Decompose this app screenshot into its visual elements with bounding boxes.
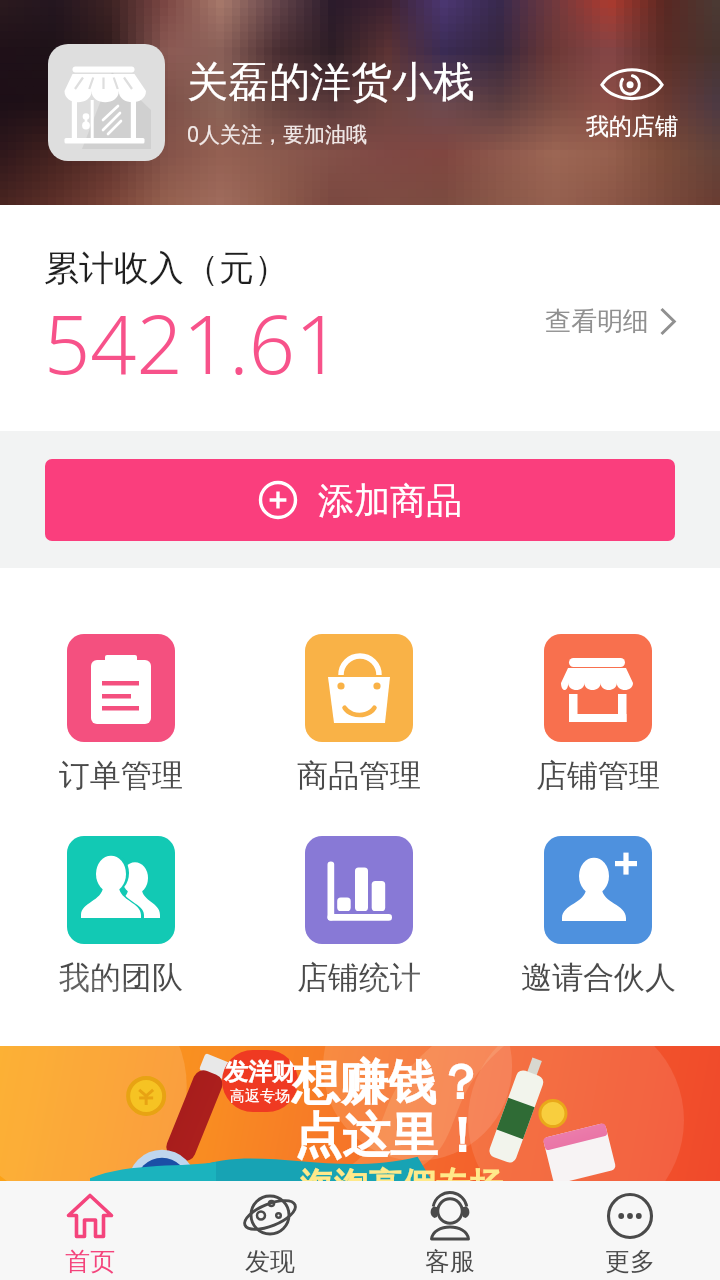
staticText: 我的团队 [59, 958, 183, 997]
button[interactable]: 添加商品 [45, 459, 675, 541]
staticText: 订单管理 [59, 756, 183, 795]
staticText: 发现 [245, 1246, 295, 1277]
button[interactable]: 我的团队 [11, 836, 231, 997]
button[interactable]: 查看明细 [541, 301, 679, 342]
button[interactable]: 首页 [0, 1181, 180, 1280]
staticText: 店铺管理 [536, 756, 660, 795]
staticText: 商品管理 [297, 756, 421, 795]
staticText: 首页 [65, 1246, 115, 1277]
button[interactable]: 订单管理 [11, 634, 231, 795]
button[interactable]: 商品管理 [249, 634, 469, 795]
staticText: 我的店铺 [586, 112, 678, 141]
button[interactable]: 更多 [540, 1181, 720, 1280]
staticText: 添加商品 [318, 478, 462, 523]
staticText: 店铺统计 [297, 958, 421, 997]
button[interactable]: 店铺统计 [249, 836, 469, 997]
button[interactable]: 促销活动横幅 [0, 1046, 720, 1181]
staticText: 更多 [605, 1246, 655, 1277]
staticText: 客服 [425, 1246, 475, 1277]
staticText: 查看明细 [545, 305, 649, 338]
button[interactable]: 店铺管理 [488, 634, 708, 795]
staticText: 累计收入（元） [44, 246, 289, 290]
staticText: 关磊的洋货小栈 [187, 57, 474, 109]
staticText: 高返专场 [230, 1087, 290, 1106]
staticText: 邀请合伙人 [521, 958, 676, 997]
button[interactable]: 发现 [180, 1181, 360, 1280]
staticText: 点这里！ [294, 1106, 486, 1166]
button[interactable]: 邀请合伙人 [488, 836, 708, 997]
button[interactable]: 客服 [360, 1181, 540, 1280]
staticText: 5421.61 [44, 287, 342, 397]
button[interactable]: 我的店铺 [578, 58, 686, 147]
staticText: 发洋财 [224, 1057, 296, 1087]
button[interactable]: 店铺头像 [48, 44, 165, 161]
staticText: 海淘高佣专场 [300, 1164, 504, 1207]
staticText: 想赚钱？ [292, 1053, 484, 1113]
staticText: 0人关注，要加油哦 [187, 120, 368, 149]
